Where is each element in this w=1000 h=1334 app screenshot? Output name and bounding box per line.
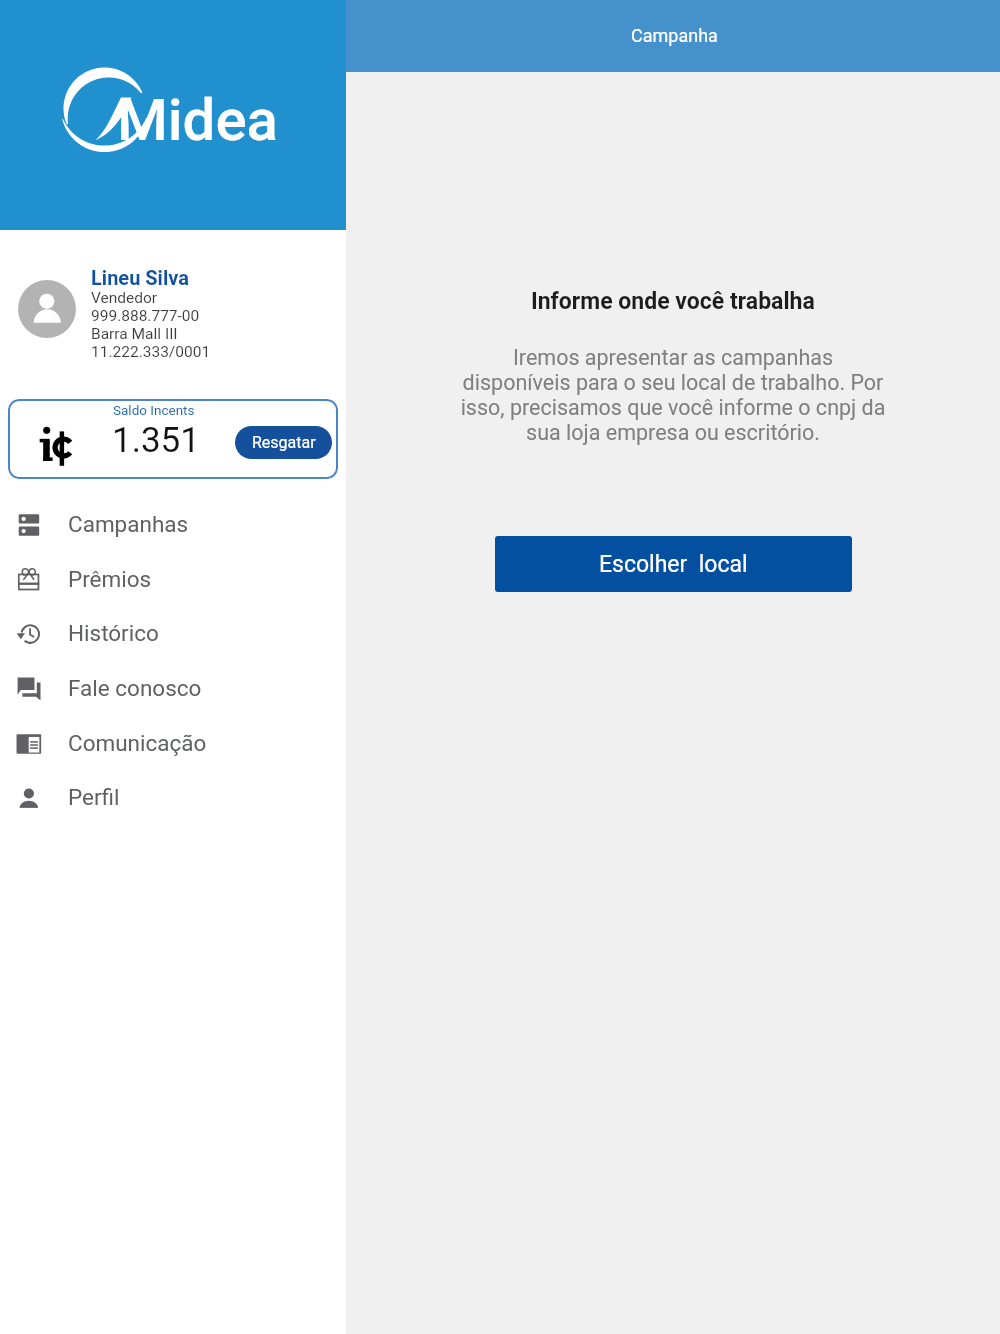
staticText: Fale conosco: [68, 675, 202, 701]
staticText: 1.351: [112, 420, 200, 461]
button[interactable]: Escolher local: [495, 536, 852, 592]
button[interactable]: Comunicação: [0, 716, 346, 771]
button[interactable]: Campanhas: [0, 497, 346, 552]
button[interactable]: Perfil: [0, 770, 346, 825]
button[interactable]: Histórico: [0, 606, 346, 661]
staticText: Resgatar: [252, 433, 316, 452]
staticText: Campanhas: [68, 511, 189, 537]
staticText: 11.222.333/0001: [91, 343, 211, 361]
staticText: Informe onde você trabalha: [531, 288, 815, 315]
staticText: 999.888.777-00: [91, 307, 200, 325]
staticText: Escolher local: [599, 551, 748, 578]
button[interactable]: Saldo Incents: [8, 399, 338, 479]
button[interactable]: Fale conosco: [0, 661, 346, 716]
staticText: Saldo Incents: [113, 402, 195, 418]
staticText: Lineu Silva: [91, 266, 189, 289]
staticText: Barra Mall III: [91, 325, 178, 343]
button[interactable]: Resgatar: [235, 426, 332, 459]
staticText: Vendedor: [91, 289, 158, 307]
staticText: Midea: [117, 86, 278, 154]
staticText: Campanha: [631, 25, 718, 46]
staticText: Histórico: [68, 620, 159, 646]
staticText: Prêmios: [68, 566, 152, 592]
staticText: Comunicação: [68, 730, 207, 756]
staticText: Iremos apresentar as campanhas disponíve…: [460, 345, 886, 445]
button[interactable]: Prêmios: [0, 552, 346, 607]
staticText: Perfil: [68, 784, 120, 810]
